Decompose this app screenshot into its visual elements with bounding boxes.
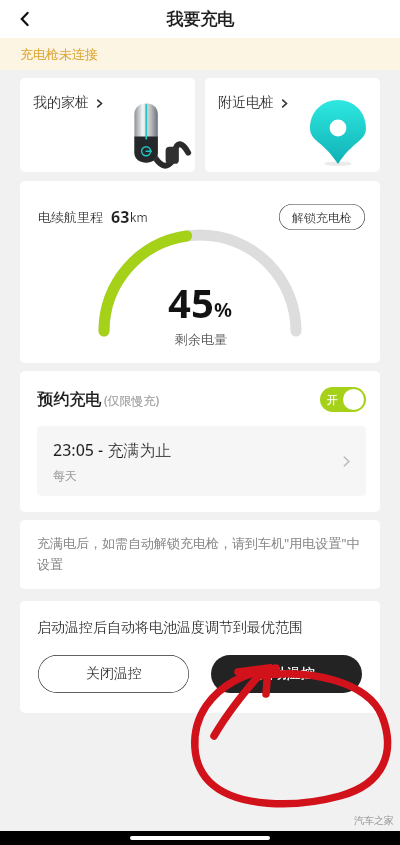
staticText: 23:05 - 充满为止 xyxy=(53,439,172,461)
staticText: 45 xyxy=(168,275,214,329)
staticText: 我要充电 xyxy=(166,9,234,30)
button[interactable]: Back xyxy=(6,0,44,38)
button[interactable]: 启动温控 xyxy=(211,655,362,693)
staticText: (仅限慢充) xyxy=(104,392,160,408)
staticText: 关闭温控 xyxy=(86,665,142,683)
staticText: 启动温控后自动将电池温度调节到最优范围 xyxy=(37,619,303,637)
staticText: 充电枪未连接 xyxy=(20,46,98,62)
staticText: 开 xyxy=(327,393,338,407)
staticText: 剩余电量 xyxy=(175,331,227,347)
staticText: 附近电桩 xyxy=(218,94,274,112)
staticText: % xyxy=(214,296,233,323)
staticText: 我的家桩 xyxy=(33,94,89,112)
button[interactable]: 我的家桩 xyxy=(20,78,195,172)
staticText: 解锁充电枪 xyxy=(292,210,352,225)
button[interactable]: 23:05 - 充满为止 xyxy=(37,426,366,496)
staticText: 启动温控 xyxy=(259,665,315,683)
staticText: 63 xyxy=(111,206,130,228)
staticText: 预约充电 xyxy=(37,390,101,410)
staticText: km xyxy=(130,209,148,225)
staticText: 充满电后，如需自动解锁充电枪，请到车机"用电设置"中设置 xyxy=(37,534,363,573)
staticText: 电续航里程 xyxy=(38,209,103,225)
staticText: 汽车之家 xyxy=(354,814,394,827)
button[interactable]: Scheduled charging toggle, on xyxy=(320,387,366,412)
staticText: 每天 xyxy=(53,468,77,483)
button[interactable]: 解锁充电枪 xyxy=(278,203,366,231)
button[interactable]: 关闭温控 xyxy=(38,655,189,693)
button[interactable]: 附近电桩 xyxy=(205,78,380,172)
